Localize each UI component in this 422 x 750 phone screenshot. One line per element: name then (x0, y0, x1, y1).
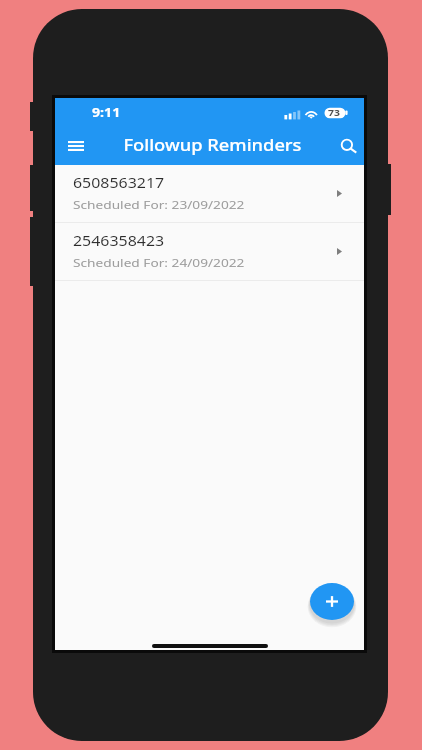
staticText: Scheduled For: 23/09/2022 (73, 197, 245, 213)
button[interactable]: Menu (58, 128, 94, 164)
staticText: Scheduled For: 24/09/2022 (73, 255, 245, 271)
staticText: 6508563217 (73, 174, 165, 192)
button[interactable]: 6508563217 (55, 165, 364, 222)
staticText: 9:11 (92, 104, 120, 120)
staticText: 73 (328, 106, 341, 118)
staticText: Followup Reminders (123, 134, 302, 155)
button[interactable]: Add reminder (308, 581, 356, 623)
button[interactable]: Search (331, 128, 367, 164)
button[interactable]: 2546358423 (55, 223, 364, 280)
staticText: 2546358423 (73, 232, 165, 250)
